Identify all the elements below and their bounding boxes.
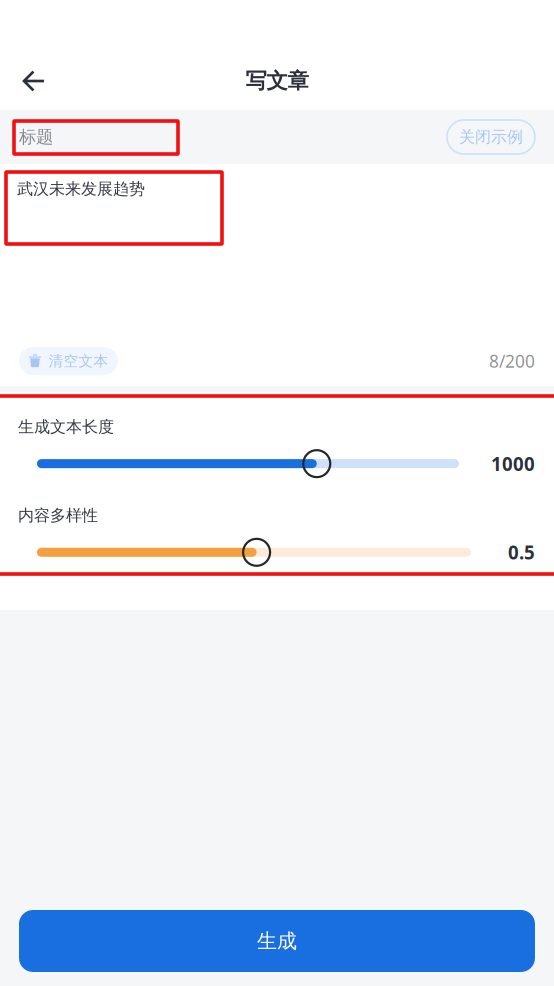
staticText: 写文章	[245, 68, 308, 94]
staticText: 8/200	[489, 349, 535, 372]
staticText: 1000	[491, 451, 535, 476]
button[interactable]: 生成	[19, 910, 535, 972]
button[interactable]: 关闭示例	[447, 120, 535, 154]
button[interactable]: 清空文本	[19, 347, 118, 375]
staticText: 关闭示例	[459, 127, 523, 147]
staticText: 清空文本	[48, 352, 108, 370]
staticText: 内容多样性	[18, 506, 98, 525]
button[interactable]: Back	[10, 59, 58, 103]
staticText: 标题	[19, 126, 53, 148]
staticText: 生成	[257, 929, 297, 953]
staticText: 武汉未来发展趋势	[17, 179, 145, 199]
staticText: 0.5	[508, 540, 535, 565]
staticText: 生成文本长度	[18, 417, 114, 437]
